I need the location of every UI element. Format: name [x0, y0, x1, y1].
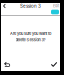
staticText: Session 3	[20, 3, 41, 9]
button[interactable]: Undo	[1, 58, 17, 71]
button[interactable]: Back	[1, 3, 6, 9]
button[interactable]: Confirm	[44, 58, 60, 71]
button[interactable]: Recording	[51, 10, 60, 14]
staticText: delete Session 3?	[15, 37, 45, 42]
staticText: Edit	[53, 4, 59, 8]
staticText: Are you sure you want to	[10, 31, 51, 36]
button[interactable]: Edit	[53, 4, 60, 8]
